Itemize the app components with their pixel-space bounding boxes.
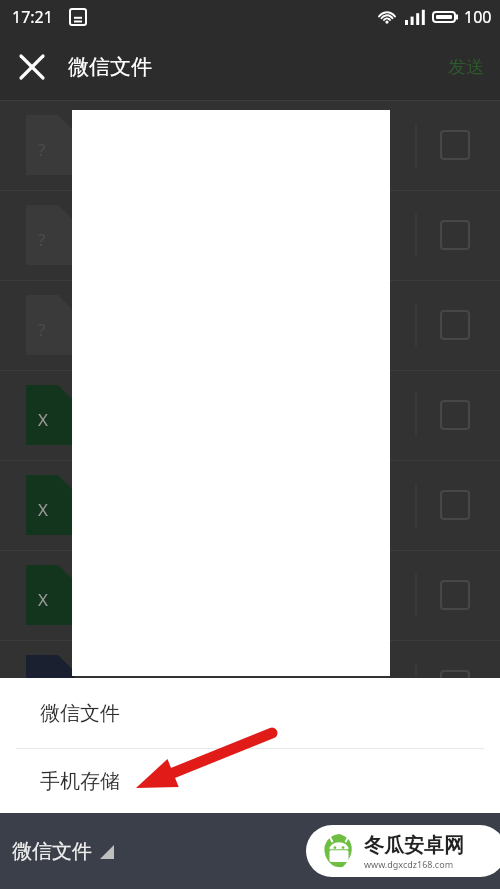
staticText: 微信文件 (40, 701, 120, 726)
staticText: ? (38, 318, 46, 341)
button[interactable]: Close (8, 43, 56, 91)
button[interactable]: 手机存储 (0, 749, 500, 813)
staticText: ? (38, 138, 46, 161)
button[interactable]: W (0, 640, 500, 730)
staticText: 17:21 (12, 6, 53, 28)
staticText: 发送 (448, 56, 484, 79)
button[interactable]: ? (0, 100, 500, 190)
staticText: 冬瓜安卓网 (364, 833, 464, 858)
staticText: 微信文件 (12, 839, 92, 864)
button[interactable]: 发送 (432, 46, 500, 89)
button[interactable]: X (0, 550, 500, 640)
button[interactable]: ? (0, 190, 500, 280)
staticText: 100 (464, 6, 492, 28)
button[interactable]: ? (0, 280, 500, 370)
staticText: ? (38, 228, 46, 251)
staticText: X (38, 498, 48, 521)
button[interactable]: X (0, 460, 500, 550)
button[interactable]: 微信文件 (0, 831, 126, 872)
staticText: 微信文件 (68, 54, 152, 80)
staticText: www.dgxcdz168.com (364, 858, 454, 870)
button[interactable]: 微信文件 (0, 678, 500, 748)
staticText: X (38, 588, 48, 611)
staticText: 手机存储 (40, 769, 120, 794)
button[interactable]: X (0, 370, 500, 460)
staticText: X (38, 408, 48, 431)
